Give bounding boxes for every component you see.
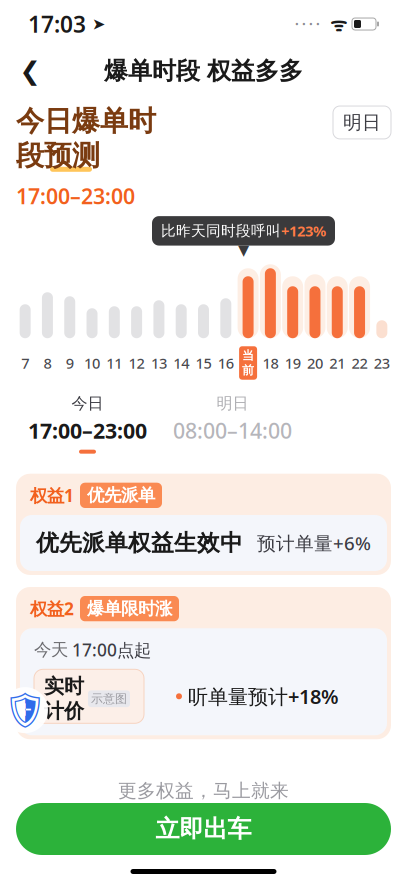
staticText: 优先派单 xyxy=(87,485,155,506)
staticText: 13 xyxy=(151,353,167,373)
staticText: 14 xyxy=(173,353,189,373)
staticText: 18 xyxy=(262,353,278,373)
staticText: 比昨天同时段呼叫 xyxy=(161,222,281,240)
staticText: 8 xyxy=(43,353,51,373)
button[interactable]: 立即出车 xyxy=(16,803,391,855)
staticText: 听单量预计+18% xyxy=(188,683,339,710)
staticText: 22 xyxy=(352,353,368,373)
staticText: 立即出车 xyxy=(155,814,251,844)
staticText: 更多权益，马上就来 xyxy=(118,779,289,802)
staticText: 今日 xyxy=(71,394,103,413)
button[interactable]: 今日 xyxy=(28,394,147,454)
staticText: 权益1 xyxy=(30,484,74,507)
staticText: 7 xyxy=(21,353,29,373)
staticText: 11 xyxy=(106,353,122,373)
staticText: 16 xyxy=(218,353,234,373)
staticText: 19 xyxy=(285,353,301,373)
staticText: 15 xyxy=(195,353,211,373)
button[interactable]: 明日 xyxy=(173,394,292,454)
staticText: 21 xyxy=(329,353,345,373)
button[interactable]: 权益1 xyxy=(16,474,391,575)
staticText: 17:00点起 xyxy=(72,638,151,661)
staticText: 17:00–23:00 xyxy=(28,416,147,445)
staticText: 20 xyxy=(307,353,323,373)
staticText: 明日 xyxy=(216,394,248,413)
staticText: 17:00–23:00 xyxy=(16,182,135,210)
staticText: 🛡 xyxy=(3,690,47,730)
staticText: 权益2 xyxy=(30,597,74,620)
staticText: 优先派单权益生效中 xyxy=(36,529,243,557)
staticText: 今日爆单时段预测 xyxy=(16,104,156,173)
staticText: 23 xyxy=(374,353,390,373)
button[interactable]: 返回 xyxy=(8,49,52,93)
staticText: ▼ xyxy=(238,242,249,258)
staticText: 明日 xyxy=(343,111,381,134)
staticText: 示意图 xyxy=(91,691,127,706)
staticText: 今天 xyxy=(34,639,68,660)
button[interactable]: 权益2 xyxy=(16,587,391,739)
staticText: 12 xyxy=(129,353,145,373)
staticText: 17:03 xyxy=(28,9,86,39)
staticText: 当前 xyxy=(242,348,254,378)
staticText: +123% xyxy=(281,221,326,241)
staticText: ᯤ xyxy=(320,12,352,36)
staticText: · · · · xyxy=(295,15,320,33)
staticText: 08:00–14:00 xyxy=(173,416,292,445)
staticText: ➤ xyxy=(86,15,105,33)
staticText: 爆单限时涨 xyxy=(87,598,172,619)
staticText: 预计单量+6% xyxy=(257,531,371,555)
button[interactable]: 安全保障 xyxy=(2,687,48,733)
staticText: ✛ xyxy=(17,700,32,719)
staticText: 9 xyxy=(66,353,74,373)
staticText: 实时计价 xyxy=(44,674,84,723)
staticText: 爆单时段 权益多多 xyxy=(104,56,303,86)
button[interactable]: 明日 xyxy=(333,106,391,139)
staticText: ❮ xyxy=(19,57,40,85)
staticText: 10 xyxy=(84,353,100,373)
